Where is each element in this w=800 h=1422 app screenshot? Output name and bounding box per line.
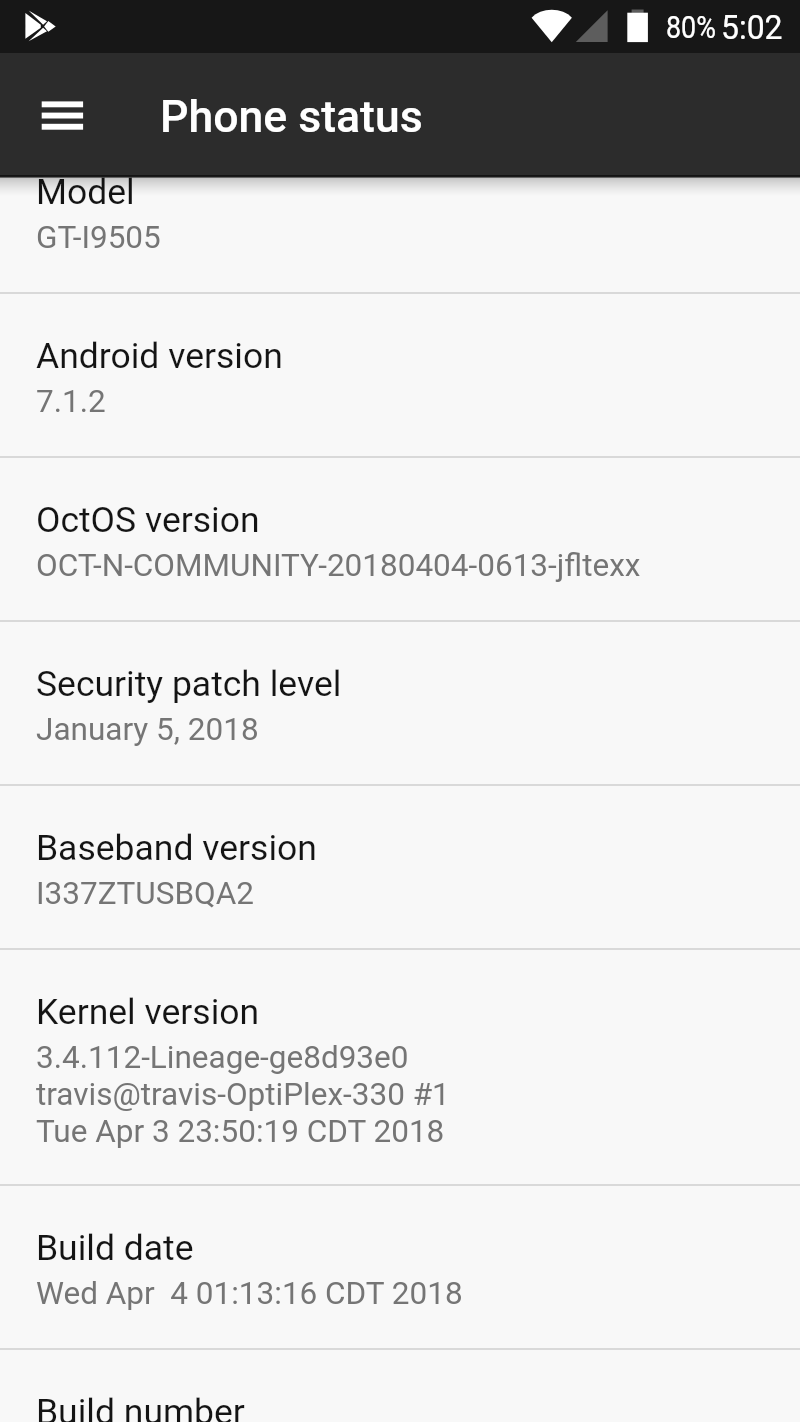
staticText: GT-I9505 (36, 219, 161, 256)
staticText: 7.1.2 (36, 383, 106, 420)
staticText: Kernel version (36, 991, 260, 1033)
button[interactable]: Kernel version (0, 950, 800, 1184)
button[interactable]: Model (0, 130, 800, 292)
staticText: Build number (36, 1391, 245, 1422)
staticText: 80% (666, 10, 716, 46)
staticText: 3.4.112-Lineage-ge8d93e0 (36, 1039, 409, 1076)
button[interactable]: Android version (0, 294, 800, 456)
button[interactable]: Open navigation drawer (20, 73, 90, 143)
button[interactable]: OctOS version (0, 458, 800, 620)
button[interactable]: Build date (0, 1186, 800, 1348)
button[interactable]: Security patch level (0, 622, 800, 784)
staticText: Build date (36, 1227, 194, 1269)
button[interactable]: Baseband version (0, 786, 800, 948)
staticText: OCT-N-COMMUNITY-20180404-0613-jfltexx (36, 547, 641, 584)
staticText: Wed Apr 4 01:13:16 CDT 2018 (36, 1275, 463, 1312)
staticText: January 5, 2018 (36, 711, 259, 748)
staticText: 5:02 (721, 8, 783, 47)
staticText: Baseband version (36, 827, 317, 869)
staticText: Security patch level (36, 663, 342, 705)
staticText: Model (36, 171, 135, 213)
staticText: Android version (36, 335, 283, 377)
staticText: OctOS version (36, 499, 260, 541)
staticText: Tue Apr 3 23:50:19 CDT 2018 (36, 1113, 445, 1150)
staticText: Phone status (160, 91, 423, 143)
button[interactable]: Build number (0, 1350, 800, 1422)
staticText: travis@travis-OptiPlex-330 #1 (36, 1076, 450, 1113)
staticText: I337ZTUSBQA2 (36, 875, 255, 912)
